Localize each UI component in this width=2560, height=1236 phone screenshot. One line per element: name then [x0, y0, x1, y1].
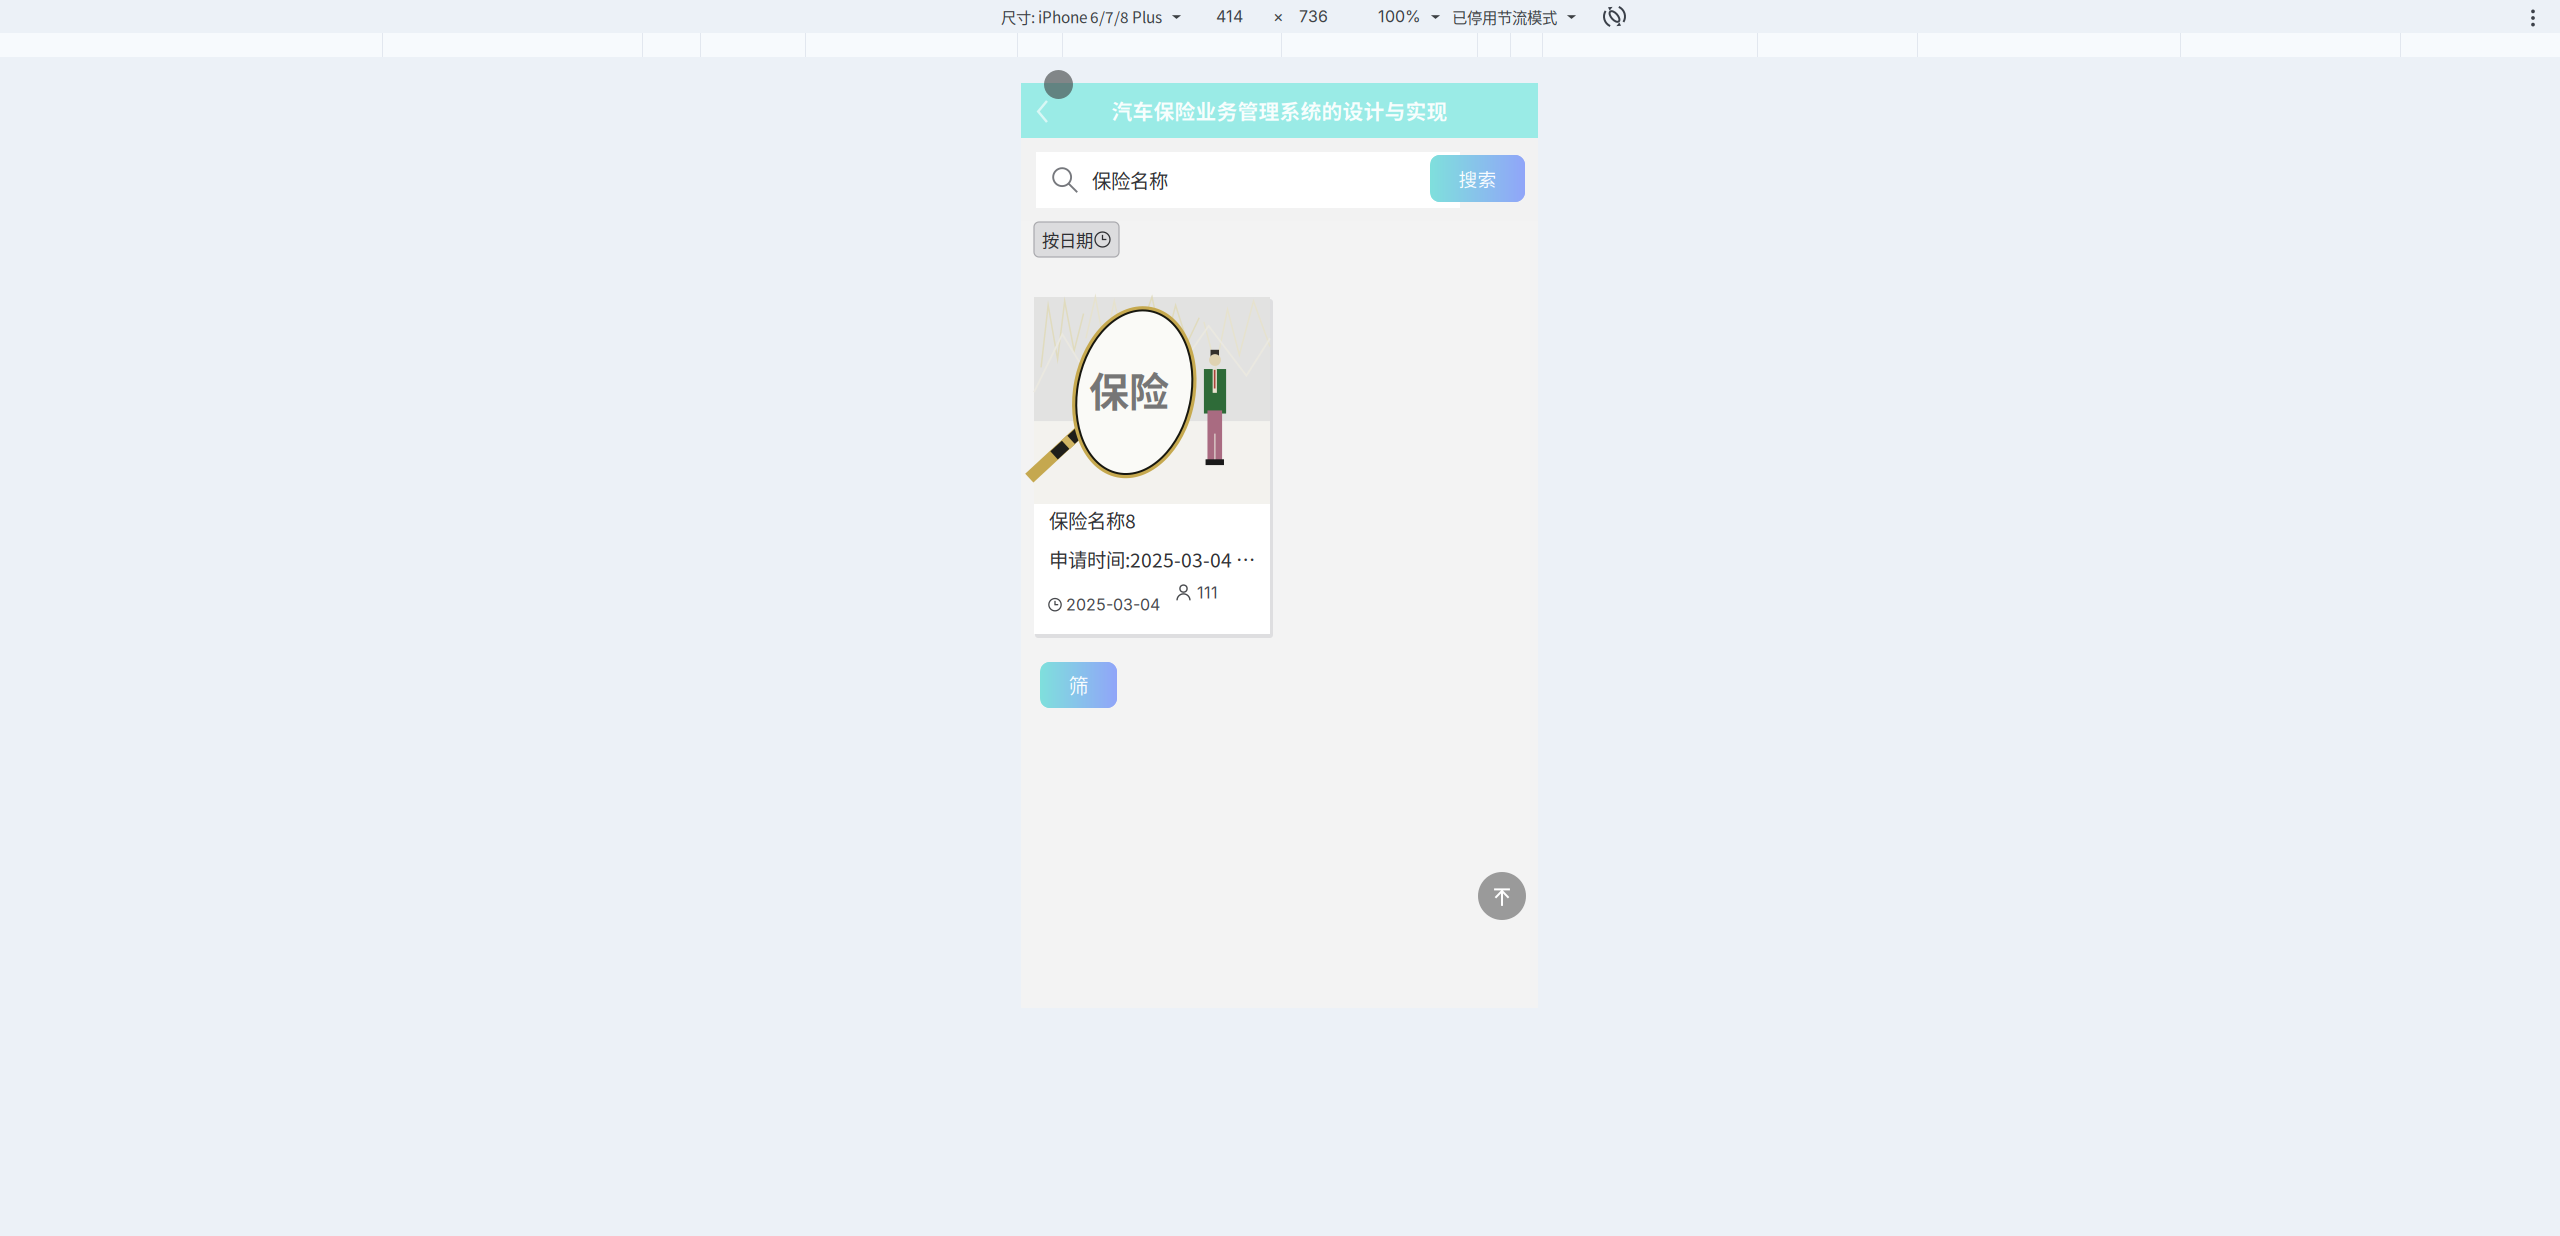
- button[interactable]: 回到顶部: [1478, 872, 1526, 920]
- button[interactable]: 按日期: [1034, 222, 1119, 257]
- button[interactable]: 返回: [1023, 84, 1063, 139]
- button[interactable]: 旋转: [1602, 0, 1627, 33]
- staticText: 保险: [1089, 360, 1169, 418]
- button[interactable]: 保险: [1034, 297, 1274, 639]
- button[interactable]: 搜索: [1430, 155, 1525, 202]
- button[interactable]: 尺寸: iPhone 6/7/8 Plus: [1001, 0, 1182, 33]
- button[interactable]: 更多选项: [2518, 2, 2548, 34]
- staticText: 汽车保险业务管理系统的设计与实现: [1111, 95, 1447, 125]
- staticText: 尺寸: iPhone 6/7/8 Plus: [1001, 5, 1162, 28]
- staticText: 111: [1197, 583, 1218, 602]
- staticText: 100%: [1378, 7, 1421, 26]
- staticText: 搜索: [1458, 165, 1496, 192]
- staticText: 申请时间:2025-03-04 …: [1049, 545, 1255, 573]
- button[interactable]: 保险名称: [1036, 152, 1460, 208]
- button[interactable]: 已停用节流模式: [1452, 0, 1577, 33]
- staticText: 已停用节流模式: [1452, 5, 1557, 28]
- button[interactable]: 筛: [1040, 662, 1117, 708]
- button[interactable]: 100%: [1378, 0, 1441, 33]
- staticText: ×: [1273, 7, 1284, 26]
- staticText: 保险名称: [1092, 166, 1168, 194]
- staticText: 筛: [1068, 670, 1088, 699]
- staticText: 736: [1299, 7, 1328, 26]
- staticText: 按日期: [1042, 227, 1093, 252]
- staticText: 保险名称8: [1049, 506, 1136, 534]
- staticText: 414: [1216, 7, 1243, 26]
- staticText: 2025-03-04: [1066, 595, 1160, 614]
